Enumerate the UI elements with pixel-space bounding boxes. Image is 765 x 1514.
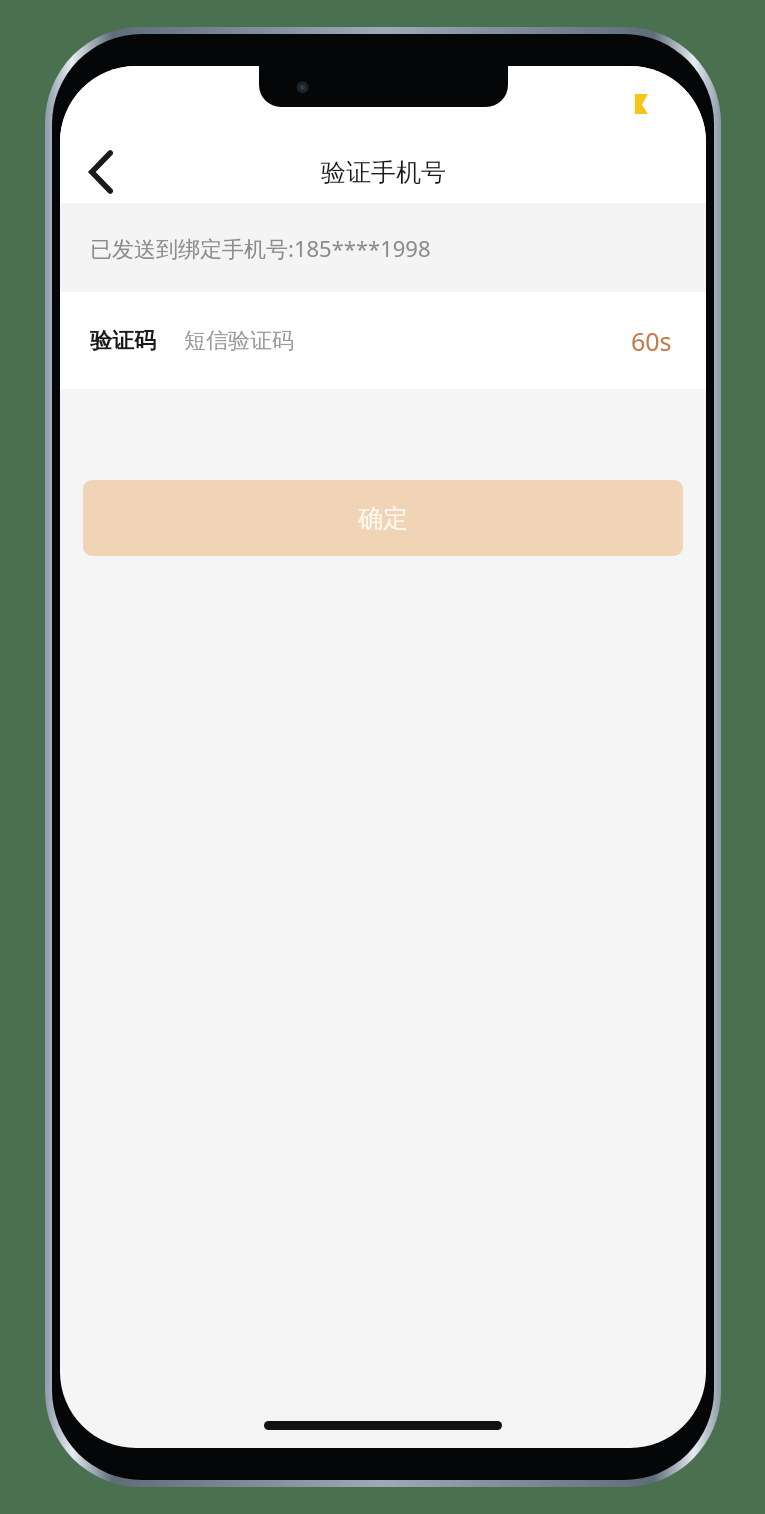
- staticText: 验证手机号: [321, 157, 446, 188]
- staticText: 短信验证码: [184, 327, 294, 355]
- button[interactable]: Back: [74, 145, 128, 199]
- staticText: 确定: [358, 503, 408, 534]
- staticText: 验证码: [90, 327, 156, 355]
- staticText: 60s: [631, 324, 672, 358]
- button[interactable]: 60s: [627, 316, 676, 366]
- staticText: 已发送到绑定手机号:185****1998: [90, 233, 431, 263]
- button[interactable]: 确定: [83, 480, 683, 556]
